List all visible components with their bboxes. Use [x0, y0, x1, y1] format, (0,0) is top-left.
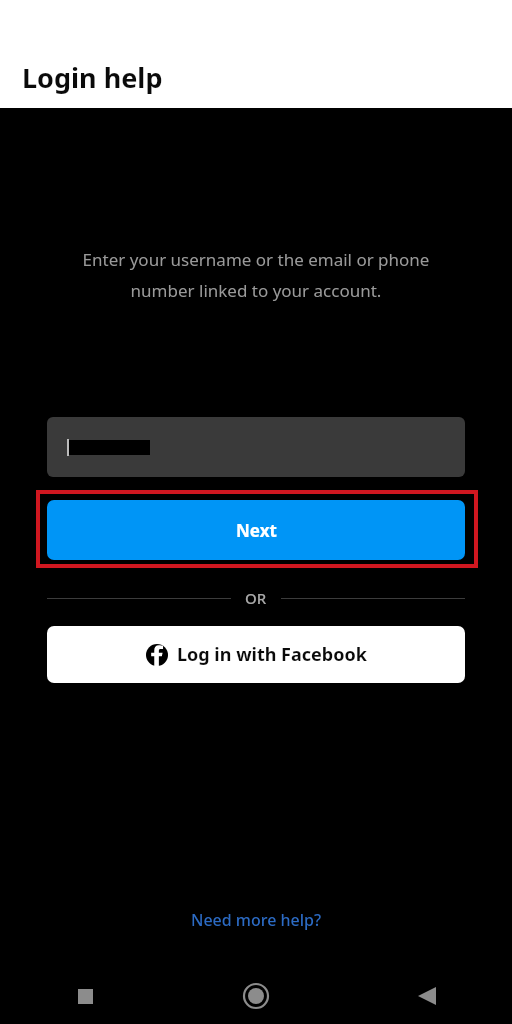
- staticText: Log in with Facebook: [177, 642, 367, 667]
- staticText: Login help: [22, 59, 163, 96]
- staticText: Next: [236, 519, 277, 542]
- button[interactable]: Recent apps: [0, 968, 170, 1024]
- button[interactable]: Next: [47, 500, 465, 560]
- button[interactable]: Log in with Facebook: [47, 626, 465, 683]
- button[interactable]: Back: [341, 968, 512, 1024]
- button[interactable]: [47, 417, 465, 477]
- button[interactable]: Need more help?: [179, 905, 334, 935]
- staticText: Enter your username or the email or phon…: [52, 248, 460, 302]
- staticText: OR: [245, 588, 267, 608]
- button[interactable]: Home: [170, 968, 341, 1024]
- staticText: Need more help?: [191, 909, 322, 931]
